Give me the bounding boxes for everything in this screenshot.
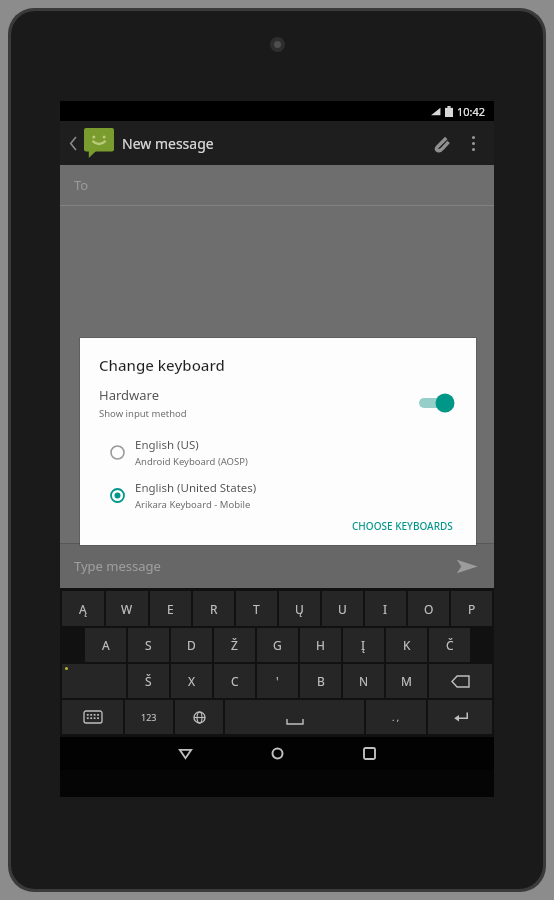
button[interactable]: Change language (175, 700, 223, 734)
staticText: Ž (231, 637, 238, 653)
button[interactable]: . , (366, 700, 426, 734)
staticText: 123 (141, 711, 157, 723)
staticText: C (231, 673, 239, 689)
staticText: Č (446, 637, 454, 653)
staticText: . , (392, 711, 400, 723)
staticText: T (253, 601, 260, 617)
button[interactable]: Hide keyboard (62, 700, 123, 734)
staticText: A (102, 637, 110, 653)
button[interactable]: Space (225, 700, 364, 734)
staticText: P (468, 601, 476, 617)
button[interactable]: G (257, 628, 298, 662)
button[interactable]: Send (450, 549, 484, 583)
staticText: K (403, 637, 411, 653)
button[interactable]: M (386, 664, 427, 698)
button[interactable]: Show input method toggle (417, 390, 457, 416)
staticText: N (359, 673, 369, 689)
button[interactable]: CHOOSE KEYBOARDS (348, 513, 457, 539)
staticText: CHOOSE KEYBOARDS (352, 519, 453, 533)
button[interactable]: E (150, 591, 191, 626)
button[interactable]: I (365, 591, 406, 626)
button[interactable]: Back (150, 737, 220, 770)
staticText: Ą (79, 601, 87, 617)
staticText: W (121, 601, 133, 617)
button[interactable]: English (US) (99, 434, 457, 470)
staticText: B (317, 673, 325, 689)
button[interactable]: 123 (125, 700, 173, 734)
staticText: English (United States) (135, 480, 257, 496)
button[interactable]: Š (128, 664, 169, 698)
button[interactable]: Ų (279, 591, 320, 626)
button[interactable]: Enter (428, 700, 492, 734)
staticText: I (383, 601, 388, 617)
button[interactable]: Attach (422, 124, 460, 162)
button[interactable]: Shift (62, 664, 126, 698)
button[interactable]: A (85, 628, 126, 662)
staticText: 10:42 (457, 104, 486, 119)
staticText: Į (361, 637, 366, 653)
button[interactable]: N (343, 664, 384, 698)
staticText: X (188, 673, 196, 689)
button[interactable]: ' (257, 664, 298, 698)
button[interactable]: English (United States) (99, 477, 457, 513)
staticText: Arikara Keyboard - Mobile (135, 498, 251, 511)
button[interactable]: W (106, 591, 148, 626)
button[interactable]: Home (242, 737, 312, 770)
staticText: S (145, 637, 152, 653)
staticText: Hardware (99, 386, 159, 404)
staticText: New message (122, 134, 214, 153)
staticText: ' (276, 673, 279, 689)
button[interactable]: Ž (214, 628, 255, 662)
button[interactable]: Į (343, 628, 384, 662)
button[interactable]: H (300, 628, 341, 662)
staticText: Ų (295, 601, 304, 617)
button[interactable]: R (193, 591, 234, 626)
staticText: D (187, 637, 196, 653)
button[interactable]: X (171, 664, 212, 698)
button[interactable]: P (451, 591, 492, 626)
button[interactable]: O (408, 591, 449, 626)
staticText: H (316, 637, 325, 653)
button[interactable]: More options (460, 124, 486, 162)
button[interactable]: B (300, 664, 341, 698)
button[interactable]: U (322, 591, 363, 626)
staticText: R (210, 601, 218, 617)
staticText: O (424, 601, 434, 617)
staticText: G (273, 637, 282, 653)
button[interactable]: Č (429, 628, 470, 662)
staticText: Š (145, 673, 152, 689)
staticText: U (338, 601, 347, 617)
button[interactable]: Back (64, 121, 82, 165)
staticText: M (401, 673, 412, 689)
button[interactable]: S (128, 628, 169, 662)
button[interactable]: Ą (62, 591, 104, 626)
staticText: Android Keyboard (AOSP) (135, 455, 248, 468)
staticText: Change keyboard (99, 355, 225, 375)
staticText: English (US) (135, 437, 199, 453)
button[interactable]: Delete (429, 664, 492, 698)
staticText: E (167, 601, 174, 617)
button[interactable]: K (386, 628, 427, 662)
staticText: Type message (74, 557, 161, 575)
staticText: To (74, 176, 89, 194)
button[interactable]: C (214, 664, 255, 698)
staticText: Show input method (99, 407, 187, 420)
button[interactable]: D (171, 628, 212, 662)
button[interactable]: T (236, 591, 277, 626)
button[interactable]: Recent apps (334, 737, 404, 770)
